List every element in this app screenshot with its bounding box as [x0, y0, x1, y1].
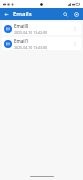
button[interactable]: Search	[61, 10, 70, 19]
staticText: 2025-04-10 13:43:00	[14, 45, 48, 50]
staticText: 2025-04-10 13:42:00	[14, 30, 48, 35]
button[interactable]: Email0	[2, 22, 81, 35]
button[interactable]: More options	[71, 40, 79, 48]
button[interactable]: More options	[71, 25, 79, 33]
button[interactable]: Back	[1, 9, 11, 19]
staticText: Email0	[14, 23, 29, 29]
staticText: Email1	[14, 38, 29, 44]
button[interactable]: Account	[72, 10, 81, 19]
staticText: Emails	[13, 10, 32, 18]
button[interactable]: Email1	[2, 37, 81, 50]
